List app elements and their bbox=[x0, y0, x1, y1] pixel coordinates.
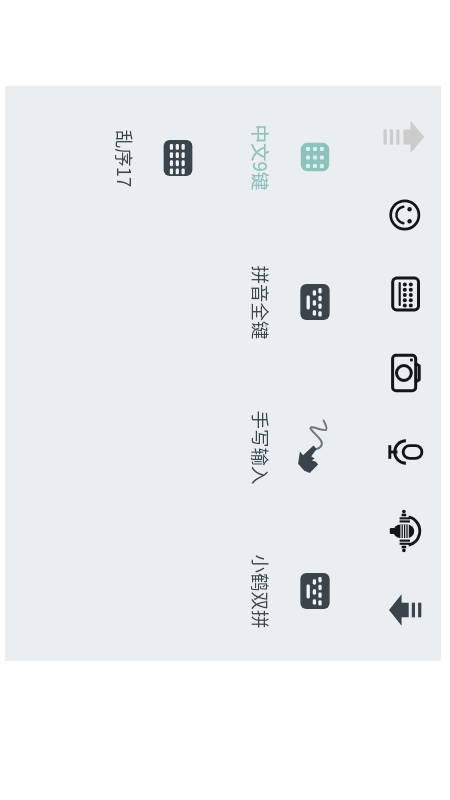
staticText: 乱序17 bbox=[110, 129, 137, 187]
button[interactable]: 手写输入 bbox=[242, 387, 278, 507]
button[interactable]: 乱序17 bbox=[148, 128, 208, 188]
button[interactable]: Microphone bbox=[381, 428, 429, 476]
button[interactable]: Emoji bbox=[381, 191, 429, 239]
button[interactable]: 小鹤双拼 bbox=[242, 531, 278, 651]
staticText: 小鹤双拼 bbox=[247, 554, 274, 629]
button[interactable]: 拼音全键 bbox=[242, 242, 278, 362]
button[interactable]: Photo bbox=[381, 349, 429, 397]
button[interactable]: Next bbox=[381, 113, 429, 161]
button[interactable]: 中文9键 bbox=[242, 97, 278, 217]
button[interactable]: 中文9键 bbox=[285, 127, 345, 187]
button[interactable]: 乱序17 bbox=[106, 98, 142, 218]
staticText: 拼音全键 bbox=[247, 265, 274, 340]
button[interactable]: 拼音全键 bbox=[285, 272, 345, 332]
button[interactable]: 手写输入 bbox=[285, 417, 345, 477]
button[interactable]: 小鹤双拼 bbox=[285, 561, 345, 621]
staticText: 手写输入 bbox=[247, 410, 274, 485]
staticText: 中文9键 bbox=[246, 124, 273, 190]
button[interactable]: Voice input bbox=[381, 507, 429, 555]
button[interactable]: Back bbox=[381, 586, 429, 634]
button[interactable]: Number keypad bbox=[381, 270, 429, 318]
